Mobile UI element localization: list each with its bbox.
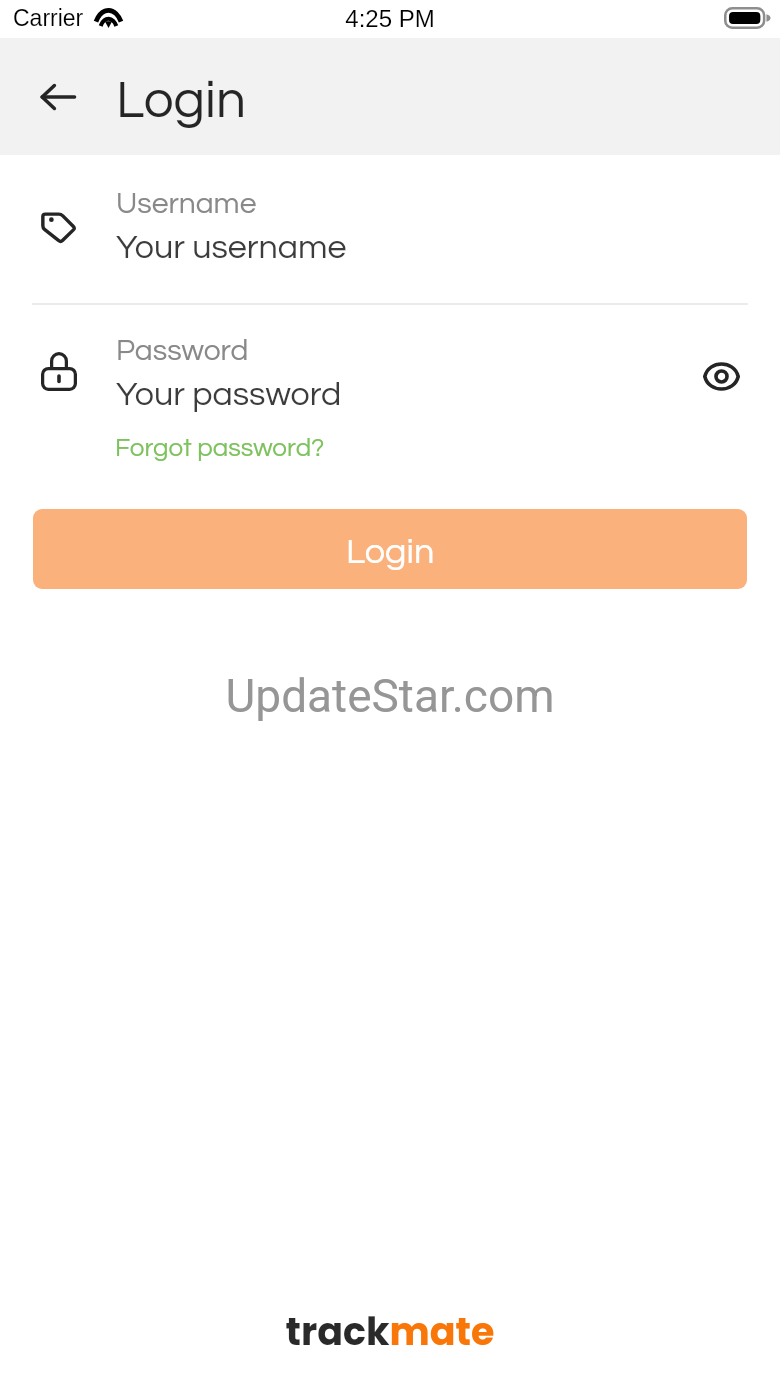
staticText: Password (116, 335, 249, 366)
staticText: Login (346, 533, 435, 570)
button[interactable]: Back (24, 63, 92, 131)
staticText: trackmate (0, 1305, 780, 1358)
button[interactable] (0, 170, 780, 290)
button[interactable]: Show password (693, 348, 750, 405)
staticText: UpdateStar.com (0, 669, 780, 723)
staticText: Carrier (13, 5, 84, 31)
staticText: Username (116, 188, 257, 219)
staticText: Login (116, 74, 246, 129)
button[interactable]: Login (33, 509, 747, 589)
staticText: Your password (116, 377, 342, 412)
staticText: 4:25 PM (0, 5, 780, 32)
button[interactable] (0, 316, 780, 476)
staticText: Your username (116, 230, 347, 265)
button[interactable]: Forgot password? (115, 435, 325, 462)
